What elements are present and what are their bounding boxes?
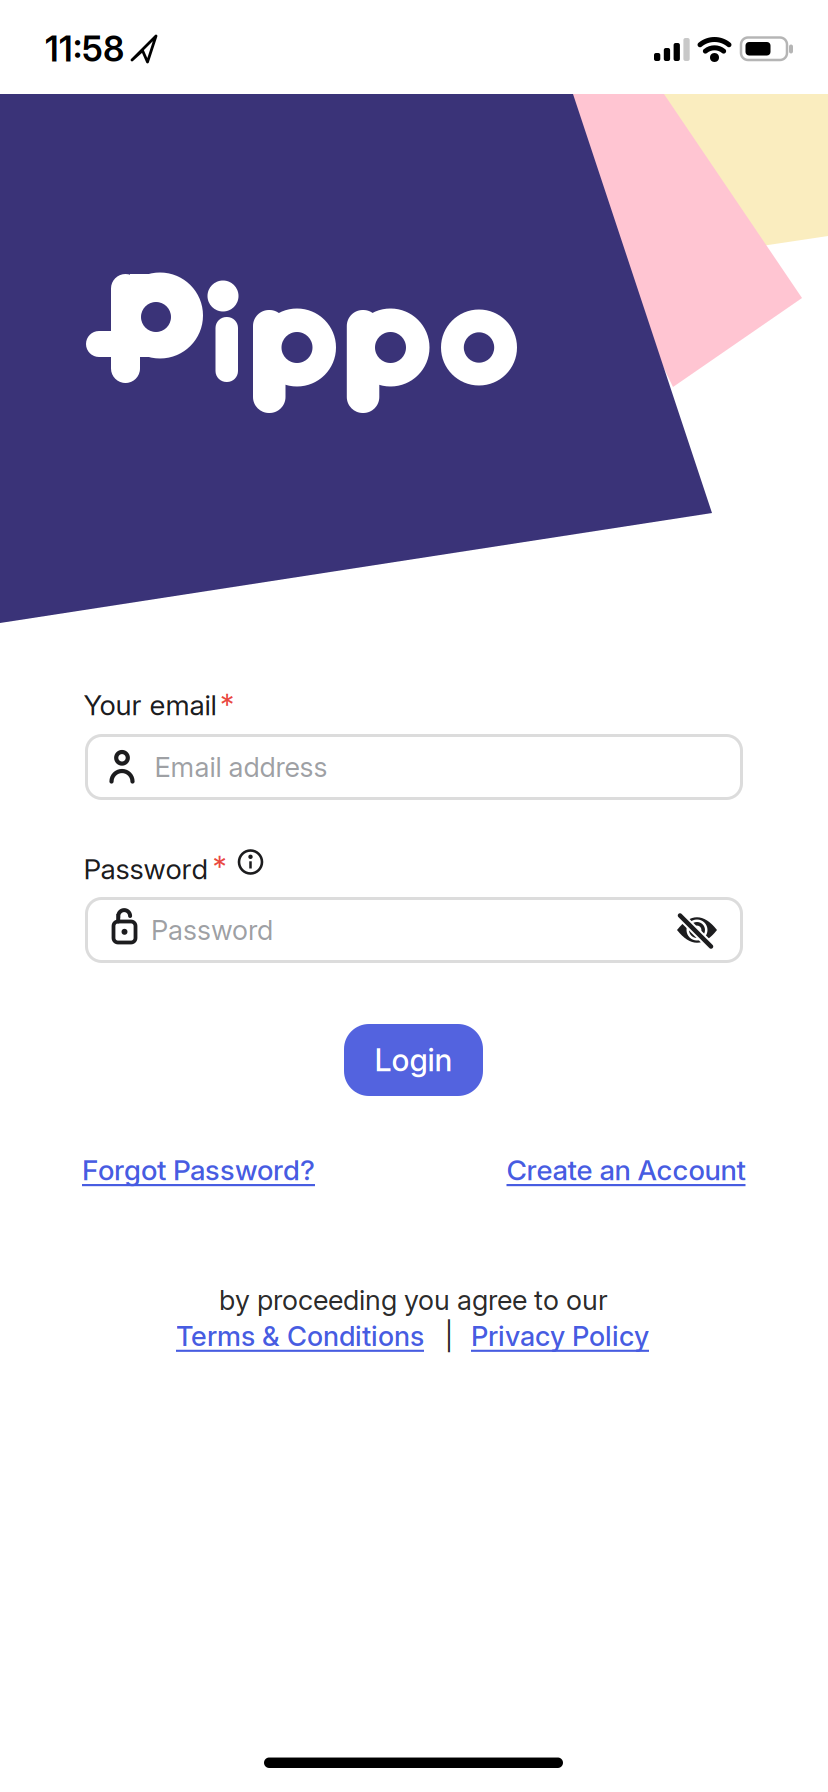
staticText: Email address <box>154 750 327 784</box>
staticText: Forgot Password? <box>82 1153 315 1187</box>
staticText: by proceeding you agree to our <box>219 1283 608 1317</box>
button[interactable]: Password info <box>237 849 263 875</box>
staticText: 11:58 <box>45 28 124 70</box>
button[interactable]: Terms & Conditions <box>176 1319 424 1353</box>
staticText: Password <box>151 913 273 947</box>
staticText: | <box>444 1319 453 1353</box>
button[interactable]: Show password <box>677 913 717 946</box>
staticText: Terms & Conditions <box>176 1319 424 1353</box>
staticText: * <box>212 849 226 885</box>
button[interactable]: Email address <box>85 734 743 800</box>
staticText: Login <box>374 1041 452 1078</box>
button[interactable]: Password <box>85 897 743 963</box>
staticText: Password <box>83 852 208 886</box>
staticText: Create an Account <box>506 1153 745 1187</box>
button[interactable]: Privacy Policy <box>471 1319 649 1353</box>
staticText: Your email <box>83 688 216 722</box>
button[interactable]: Create an Account <box>506 1153 745 1187</box>
staticText: Privacy Policy <box>471 1319 649 1353</box>
button[interactable]: Login <box>344 1024 483 1096</box>
staticText: * <box>220 687 234 723</box>
button[interactable]: Forgot Password? <box>82 1153 315 1187</box>
